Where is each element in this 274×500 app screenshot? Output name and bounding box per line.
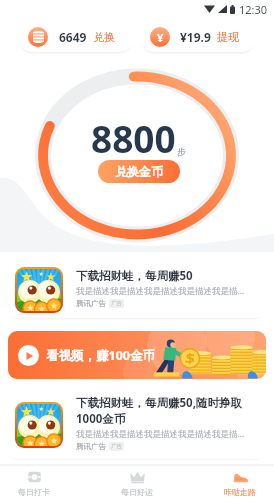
staticText: ¥: [157, 30, 164, 45]
button[interactable]: ¥: [139, 22, 257, 52]
button[interactable]: Daily check in: [14, 466, 54, 500]
staticText: 兑换金币: [115, 164, 163, 179]
staticText: 腾讯广告: [76, 442, 106, 451]
button[interactable]: 兑换金币: [98, 160, 180, 183]
button[interactable]: 下载招财蛙，每周赚50: [8, 261, 266, 318]
staticText: 12:30: [239, 2, 268, 17]
staticText: 我是描述我是描述我是描述我是描述我是描...: [76, 428, 245, 440]
staticText: 看视频，赚100金币: [46, 347, 155, 364]
staticText: 8800: [91, 113, 176, 163]
staticText: 广告: [111, 300, 122, 307]
button[interactable]: Daily luck: [117, 466, 157, 500]
staticText: 步: [177, 146, 186, 157]
staticText: 腾讯广告: [76, 299, 106, 308]
staticText: 咔哒走路: [224, 487, 256, 497]
staticText: 广告: [111, 443, 122, 450]
staticText: 6649: [59, 29, 87, 45]
staticText: 提现: [217, 30, 239, 44]
staticText: 下载招财蛙，每周赚50,随时挣取1000金币: [76, 395, 258, 427]
staticText: 每日打卡: [18, 487, 50, 497]
button[interactable]: Walking: [220, 466, 260, 500]
staticText: 每日好运: [121, 487, 153, 497]
button[interactable]: 6649: [17, 22, 134, 52]
staticText: ¥19.9: [180, 29, 211, 45]
staticText: 下载招财蛙，每周赚50: [76, 268, 193, 284]
button[interactable]: 看视频，赚100金币: [8, 331, 266, 379]
button[interactable]: 下载招财蛙，每周赚50,随时挣取1000金币: [8, 391, 266, 459]
staticText: 兑换: [93, 30, 115, 44]
staticText: 我是描述我是描述我是描述我是描述我是描...: [76, 285, 245, 297]
